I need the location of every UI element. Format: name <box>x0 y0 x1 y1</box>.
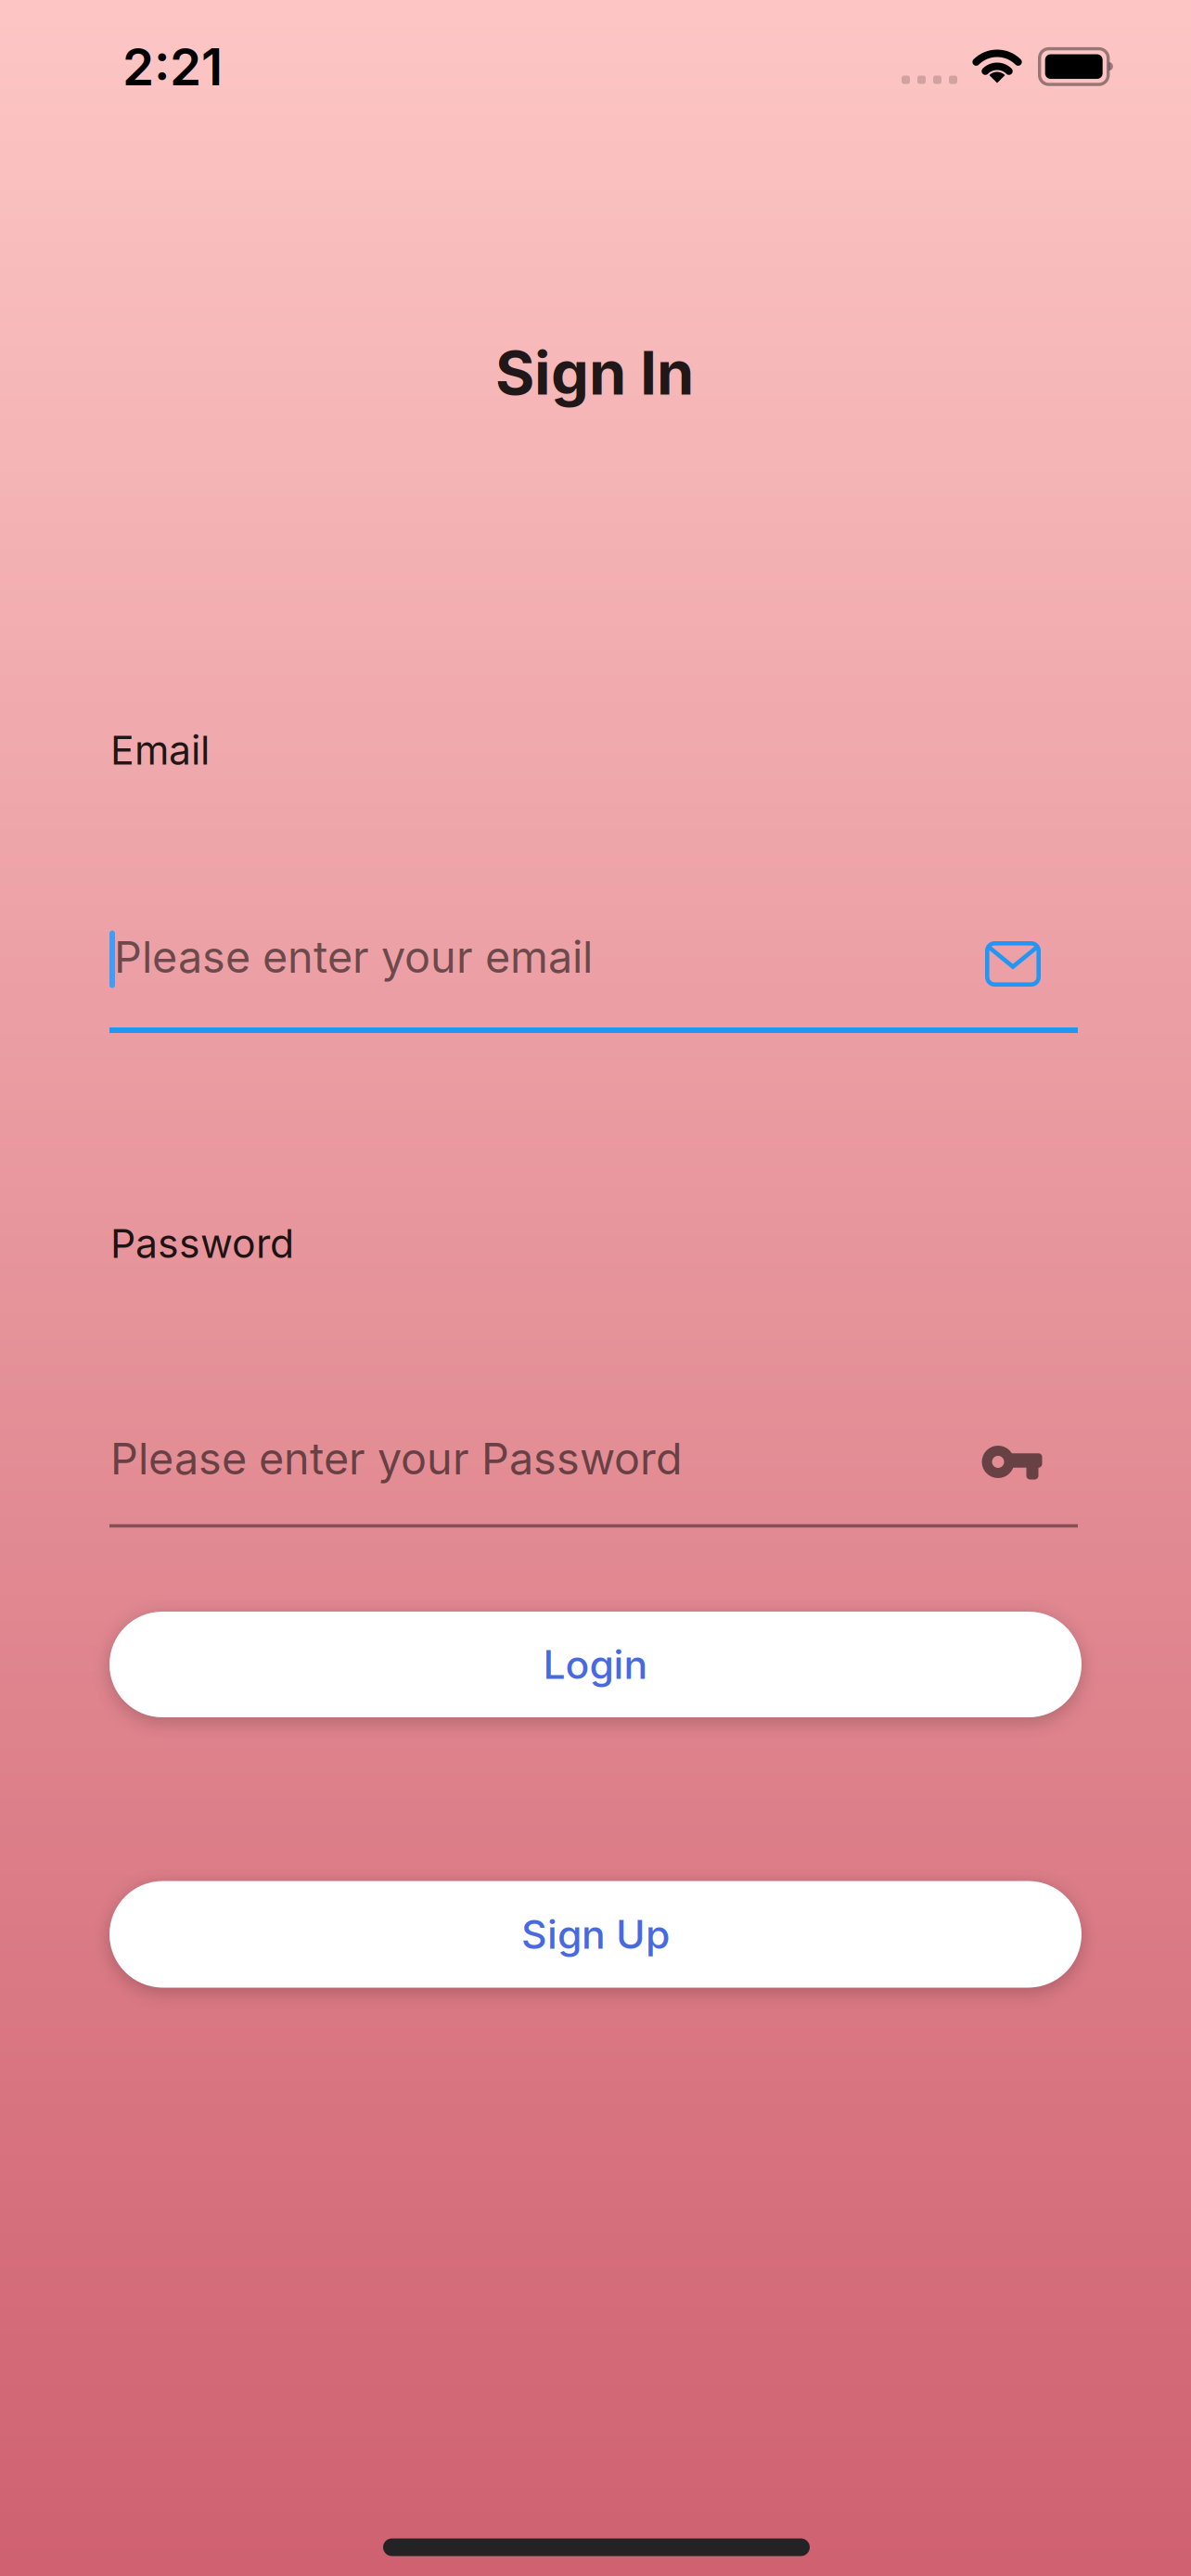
staticText: Email <box>110 726 210 774</box>
staticText: Please enter your email <box>114 931 593 983</box>
button[interactable]: Please enter your Password <box>109 1423 1078 1529</box>
staticText: 2:21 <box>122 36 223 97</box>
staticText: Login <box>543 1641 648 1688</box>
staticText: Sign In <box>495 337 694 409</box>
staticText: Sign Up <box>521 1910 670 1958</box>
staticText: Please enter your Password <box>110 1432 683 1485</box>
button[interactable]: Sign Up <box>109 1881 1082 1988</box>
button[interactable]: Login <box>109 1612 1082 1717</box>
staticText: Password <box>110 1220 294 1267</box>
button[interactable]: Please enter your email <box>109 913 1078 1033</box>
